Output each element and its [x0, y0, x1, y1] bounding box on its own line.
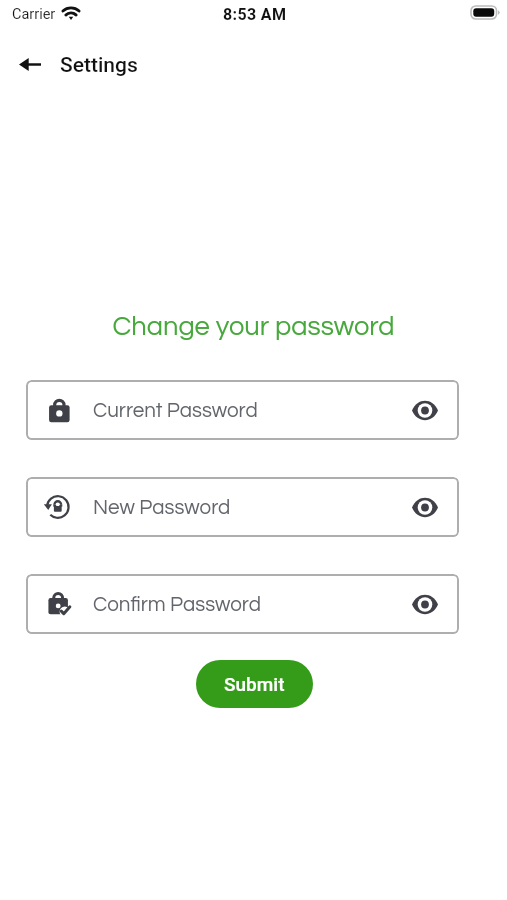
staticText: Submit — [224, 673, 285, 695]
staticText: New Password — [93, 497, 231, 518]
button[interactable]: Back — [15, 49, 45, 79]
button[interactable]: Back — [0, 46, 507, 84]
button[interactable]: New Password — [26, 477, 459, 537]
staticText: Settings — [60, 53, 138, 78]
button[interactable]: Submit — [196, 660, 313, 708]
button[interactable]: Current Password — [26, 380, 459, 440]
button[interactable]: Show password — [403, 388, 447, 432]
button[interactable]: Show password — [403, 582, 447, 626]
staticText: Current Password — [93, 400, 258, 421]
button[interactable]: Show password — [403, 485, 447, 529]
staticText: Change your password — [0, 313, 507, 341]
staticText: 8:53 AM — [223, 5, 287, 24]
button[interactable]: Confirm Password — [26, 574, 459, 634]
staticText: Carrier — [12, 6, 56, 23]
staticText: Confirm Password — [93, 594, 261, 615]
